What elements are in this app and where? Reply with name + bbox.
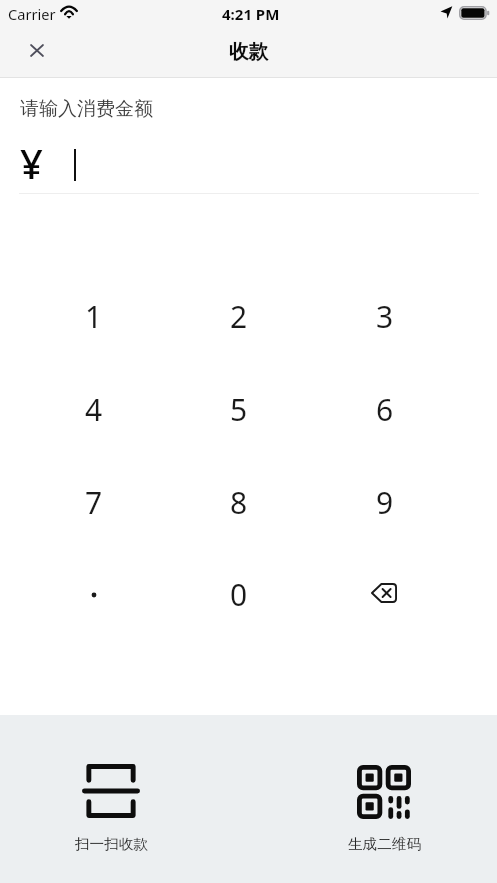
staticText: 8 <box>230 482 248 523</box>
staticText: 请输入消费金额 <box>20 97 153 121</box>
button[interactable]: 7 <box>21 456 167 549</box>
button[interactable]: 2 <box>166 270 312 363</box>
staticText: 9 <box>376 482 394 523</box>
button[interactable]: 1 <box>21 270 167 363</box>
button[interactable]: 6 <box>312 363 458 456</box>
staticText: 收款 <box>229 39 268 64</box>
button[interactable]: 生成二维码 <box>314 715 454 883</box>
button[interactable]: 0 <box>166 548 312 641</box>
staticText: 4 <box>85 389 103 430</box>
button[interactable]: Backspace <box>312 548 458 641</box>
button[interactable] <box>21 548 167 641</box>
button[interactable]: Close <box>12 26 61 75</box>
staticText: 5 <box>230 389 248 430</box>
button[interactable]: 扫一扫收款 <box>41 715 181 883</box>
staticText: 生成二维码 <box>348 835 421 853</box>
staticText: 6 <box>376 389 394 430</box>
button[interactable]: 4 <box>21 363 167 456</box>
staticText: 4:21 PM <box>222 4 280 24</box>
button[interactable]: 3 <box>312 270 458 363</box>
staticText: 0 <box>230 574 248 615</box>
staticText: 3 <box>376 296 394 337</box>
button[interactable]: 8 <box>166 456 312 549</box>
button[interactable]: 9 <box>312 456 458 549</box>
staticText: ¥ <box>20 136 43 190</box>
staticText: Carrier <box>8 4 56 24</box>
staticText: 2 <box>230 296 248 337</box>
staticText: 扫一扫收款 <box>75 835 148 853</box>
button[interactable]: 5 <box>166 363 312 456</box>
staticText: 7 <box>85 482 103 523</box>
staticText: 1 <box>85 296 103 337</box>
